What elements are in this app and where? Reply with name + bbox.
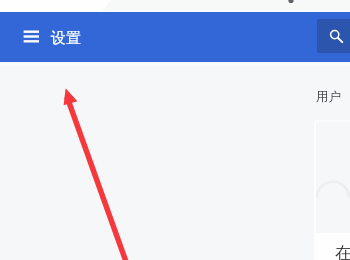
staticText: 在 [335, 243, 350, 260]
staticText: 设置 [51, 29, 81, 48]
button[interactable]: Menu [17, 19, 46, 48]
button[interactable]: Search [317, 19, 350, 53]
staticText: 用户 [316, 89, 341, 105]
